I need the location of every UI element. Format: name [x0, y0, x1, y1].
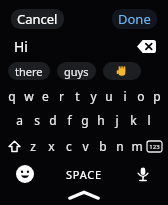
button[interactable]: s	[28, 111, 45, 128]
button[interactable]: p	[149, 87, 165, 104]
button[interactable]: o	[133, 87, 149, 104]
button[interactable]: t	[69, 87, 85, 104]
staticText: Hi	[14, 37, 28, 56]
button[interactable]: z	[24, 137, 42, 155]
staticText: z	[30, 138, 36, 154]
button[interactable]: k	[125, 111, 141, 128]
staticText: r	[59, 88, 64, 104]
button[interactable]: y	[85, 87, 101, 104]
button[interactable]: v	[77, 137, 94, 155]
staticText: i	[123, 88, 127, 104]
staticText: u	[105, 88, 113, 104]
staticText: e	[42, 88, 49, 104]
staticText: v	[82, 138, 89, 154]
button[interactable]: h	[93, 111, 109, 128]
staticText: SPACE	[66, 167, 103, 182]
staticText: p	[153, 88, 161, 104]
button[interactable]: q	[3, 87, 20, 104]
button[interactable]: Numbers and symbols	[145, 137, 164, 155]
button[interactable]: there	[8, 62, 50, 80]
button[interactable]: b	[94, 137, 111, 155]
button[interactable]: Backspace	[134, 37, 158, 55]
staticText: a	[16, 112, 23, 128]
button[interactable]: u	[101, 87, 117, 104]
staticText: w	[24, 88, 34, 104]
button[interactable]: Shift	[4, 137, 24, 155]
staticText: m	[131, 138, 143, 154]
staticText: s	[34, 112, 40, 128]
staticText: g	[81, 112, 89, 128]
staticText: y	[90, 88, 97, 104]
button[interactable]: x	[42, 137, 60, 155]
staticText: h	[97, 112, 105, 128]
staticText: d	[49, 112, 57, 128]
staticText: f	[67, 112, 72, 128]
button[interactable]: j	[109, 111, 125, 128]
button[interactable]: i	[117, 87, 133, 104]
staticText: x	[48, 138, 55, 154]
staticText: c	[66, 138, 72, 154]
staticText: there	[15, 64, 43, 79]
staticText: t	[75, 88, 80, 104]
button[interactable]: e	[37, 87, 53, 104]
staticText: n	[116, 138, 124, 154]
staticText: q	[8, 88, 16, 104]
staticText: 123	[149, 143, 160, 151]
button[interactable]: l	[141, 111, 157, 128]
staticText: b	[99, 138, 107, 154]
staticText: k	[130, 112, 137, 128]
staticText: Cancel	[17, 10, 58, 28]
button[interactable]: m	[128, 137, 145, 155]
button[interactable]: guys	[57, 62, 96, 80]
button[interactable]: c	[60, 137, 77, 155]
button[interactable]: Expand	[0, 191, 168, 205]
button[interactable]: d	[45, 111, 61, 128]
staticText: o	[137, 88, 145, 104]
button[interactable]: a	[11, 111, 28, 128]
button[interactable]: g	[77, 111, 93, 128]
button[interactable]: r	[53, 87, 69, 104]
button[interactable]: Cancel	[11, 9, 64, 29]
staticText: Done	[118, 10, 151, 28]
button[interactable]: w	[20, 87, 37, 104]
button[interactable]: Voice input	[130, 161, 156, 187]
button[interactable]: n	[111, 137, 128, 155]
button[interactable]: f	[61, 111, 77, 128]
staticText: guys	[64, 64, 89, 79]
button[interactable]: Waving hand emoji	[103, 62, 141, 80]
button[interactable]: Done	[112, 9, 157, 29]
button[interactable]: Emoji	[12, 161, 38, 187]
button[interactable]: SPACE	[38, 161, 130, 187]
staticText: j	[115, 112, 119, 128]
staticText: l	[147, 112, 151, 128]
